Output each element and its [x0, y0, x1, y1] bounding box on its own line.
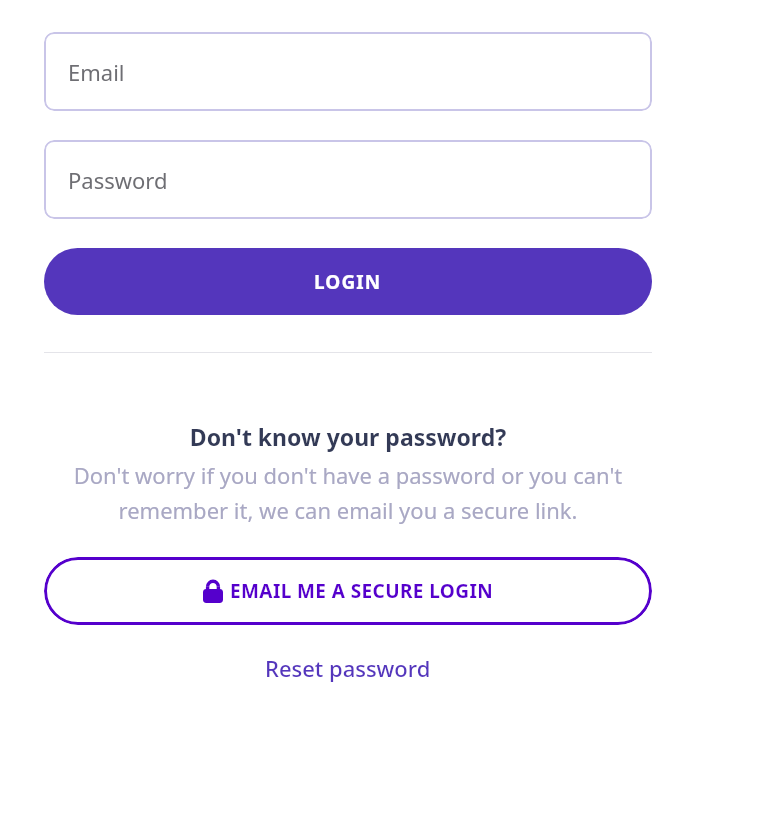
staticText: Don't worry if you don't have a password…: [44, 460, 652, 526]
button[interactable]: Email: [44, 32, 652, 111]
staticText: Reset password: [265, 653, 431, 683]
button[interactable]: LOGIN: [44, 248, 652, 315]
button[interactable]: Reset password: [259, 647, 437, 689]
staticText: Password: [68, 165, 168, 195]
staticText: LOGIN: [314, 269, 382, 295]
button[interactable]: Password: [44, 140, 652, 219]
staticText: Email: [68, 57, 125, 87]
staticText: EMAIL ME A SECURE LOGIN: [230, 578, 494, 604]
button[interactable]: Secure: [44, 557, 652, 625]
other: Secure: [203, 579, 223, 603]
staticText: Don't know your password?: [44, 421, 652, 452]
